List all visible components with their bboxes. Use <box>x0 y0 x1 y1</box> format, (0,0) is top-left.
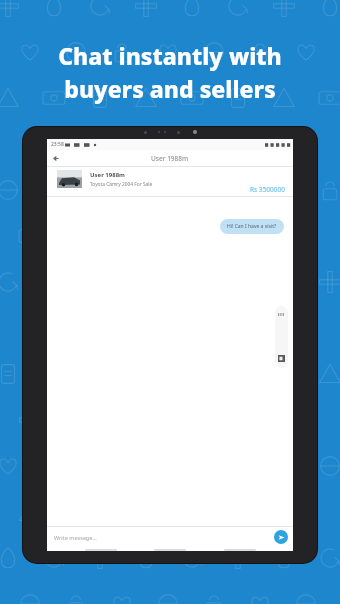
staticText: Rs 3500000 <box>250 185 285 194</box>
staticText: buyers and sellers <box>0 73 340 104</box>
staticText: Toyota Camry 2004 For Sale <box>90 181 153 188</box>
button[interactable]: Scroll handle <box>275 306 288 368</box>
staticText: Chat instantly with <box>0 40 340 71</box>
button[interactable]: User 1988m <box>47 167 293 197</box>
staticText: 23:58 <box>51 141 64 148</box>
staticText: User 1988m <box>90 171 125 179</box>
staticText: User 1988m <box>151 154 189 163</box>
button[interactable]: Send <box>274 530 288 544</box>
button[interactable]: Write message... <box>54 530 97 544</box>
staticText: Write message... <box>54 534 97 541</box>
button[interactable]: Back <box>47 150 64 167</box>
staticText: Hi! Can I have a visit? <box>227 223 277 230</box>
